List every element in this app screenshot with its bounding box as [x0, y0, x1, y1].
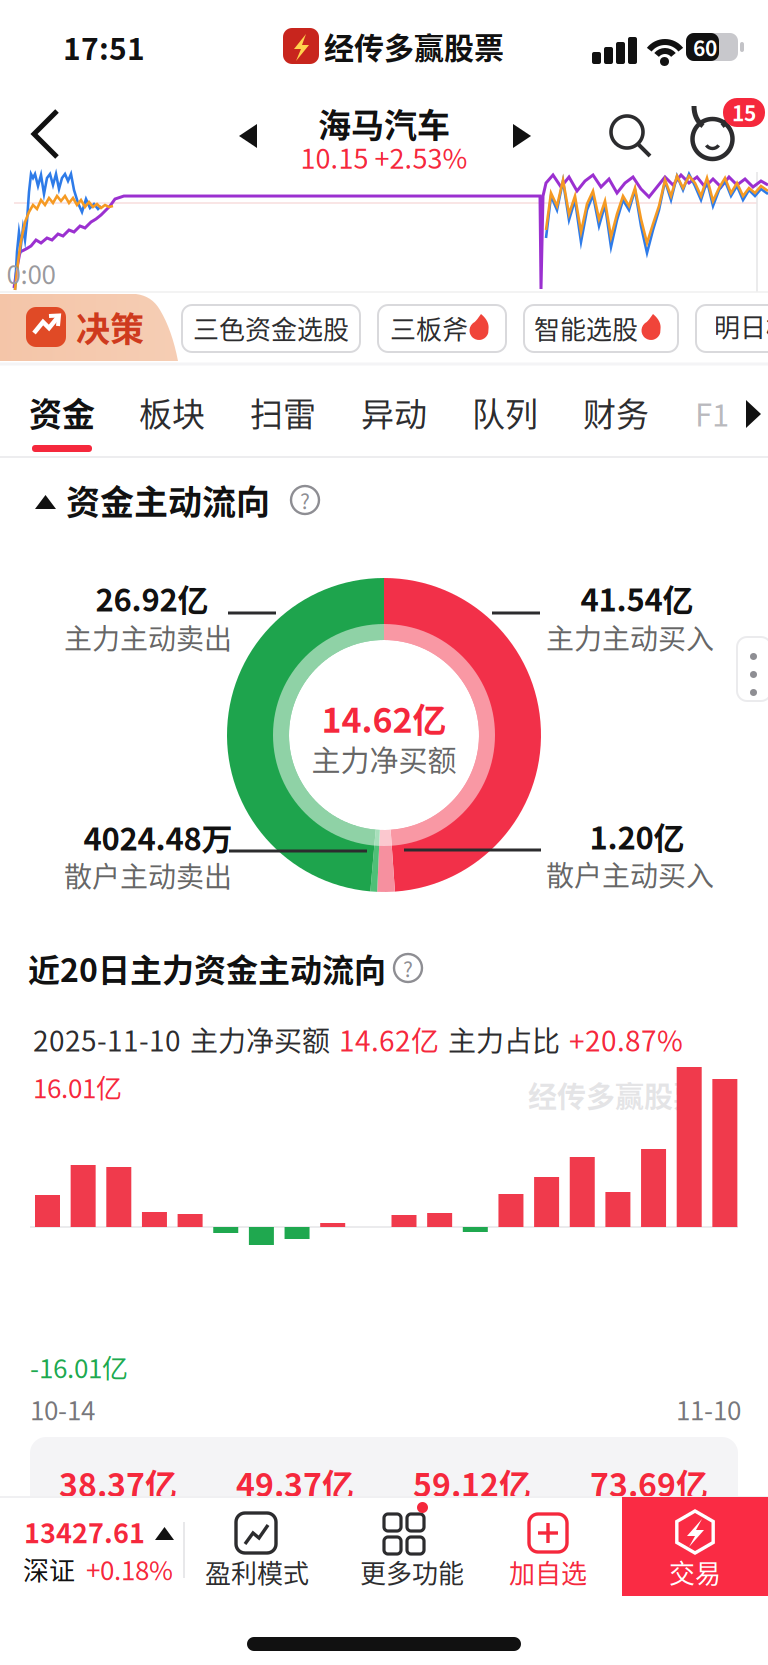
- staticText: 深证: [23, 1550, 75, 1588]
- staticText: 交易: [669, 1553, 721, 1591]
- staticText: 59.12亿: [413, 1460, 531, 1506]
- staticText: 17:51: [63, 25, 145, 69]
- staticText: 38.37亿: [59, 1460, 177, 1506]
- staticText: 60: [693, 32, 717, 62]
- staticText: 经传多赢股票: [324, 24, 504, 68]
- staticText: 决策: [76, 302, 144, 352]
- staticText: 73.69亿: [590, 1460, 708, 1506]
- staticText: 三板斧: [390, 309, 468, 347]
- staticText: 三色资金选股: [193, 309, 349, 347]
- staticText: 散户主动卖出: [64, 855, 232, 895]
- staticText: 主力净买额: [311, 738, 456, 780]
- staticText: 41.54亿: [580, 576, 693, 620]
- staticText: 16.01亿: [33, 1068, 122, 1106]
- staticText: ?: [300, 485, 310, 515]
- staticText: +0.18%: [86, 1550, 173, 1588]
- staticText: 资金: [29, 388, 95, 436]
- staticText: 明日榜: [714, 307, 768, 345]
- staticText: 0:00: [6, 254, 55, 292]
- staticText: +20.87%: [569, 1019, 683, 1059]
- staticText: -16.01亿: [30, 1348, 128, 1386]
- staticText: 异动: [361, 388, 427, 436]
- staticText: 近20日主力资金主动流向: [28, 945, 386, 991]
- staticText: 资金主动流向: [66, 475, 270, 525]
- staticText: 10-14: [30, 1390, 95, 1428]
- staticText: 2025-11-10: [33, 1019, 181, 1059]
- staticText: F1: [695, 391, 729, 435]
- staticText: 主力占比: [448, 1019, 560, 1059]
- staticText: 财务: [583, 388, 649, 436]
- staticText: ?: [403, 953, 413, 983]
- staticText: 主力净买额: [190, 1019, 330, 1059]
- staticText: 15: [732, 97, 756, 127]
- staticText: 加自选: [509, 1553, 587, 1591]
- staticText: 主力主动买入: [546, 617, 714, 657]
- staticText: 板块: [139, 388, 205, 436]
- staticText: 盈利模式: [205, 1553, 309, 1591]
- staticText: 26.92亿: [95, 576, 208, 620]
- staticText: 1.20亿: [589, 814, 684, 858]
- staticText: 主力主动卖出: [64, 617, 232, 657]
- staticText: 14.62亿: [339, 1019, 439, 1059]
- staticText: 散户主动买入: [546, 854, 714, 894]
- staticText: 13427.61: [24, 1512, 145, 1551]
- staticText: 14.62亿: [321, 693, 446, 743]
- staticText: 队列: [472, 388, 538, 436]
- staticText: 更多功能: [360, 1553, 464, 1591]
- staticText: 海马汽车: [318, 99, 450, 147]
- staticText: 智能选股: [534, 309, 638, 347]
- staticText: 49.37亿: [236, 1460, 354, 1506]
- staticText: 10.15 +2.53%: [300, 137, 467, 177]
- staticText: 11-10: [676, 1390, 741, 1428]
- staticText: 扫雷: [250, 388, 316, 436]
- staticText: 4024.48万: [83, 815, 232, 859]
- staticText: 经传多赢股票: [528, 1074, 702, 1116]
